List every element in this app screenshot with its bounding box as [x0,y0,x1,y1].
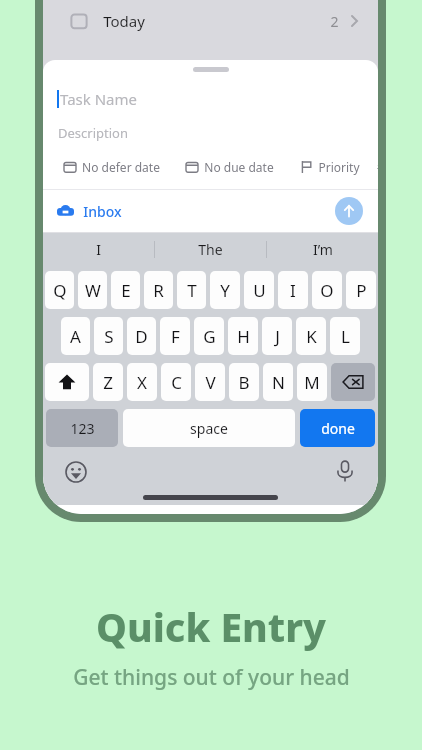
staticText: B [238,371,250,394]
button[interactable]: space [123,409,295,447]
button[interactable]: No defer date [55,154,169,179]
button[interactable]: M [297,363,327,401]
staticText: C [171,371,182,394]
staticText: I [290,279,296,302]
button[interactable]: L [330,317,360,355]
button[interactable]: K [296,317,326,355]
staticText: Inbox [83,202,122,221]
button[interactable]: Shift [45,363,89,401]
staticText: Quick Entry [96,600,326,653]
button[interactable]: I’m [267,240,378,259]
staticText: K [306,325,317,348]
staticText: L [341,325,350,348]
button[interactable]: V [195,363,225,401]
button[interactable]: Y [210,271,240,309]
button[interactable]: J [262,317,292,355]
button[interactable]: Backspace [331,363,375,401]
staticText: Task Name [60,89,137,109]
staticText: Priority [318,159,360,175]
staticText: done [321,419,355,438]
button[interactable]: H [228,317,258,355]
staticText: 2 [330,12,339,31]
button[interactable]: N [263,363,293,401]
button[interactable]: G [194,317,224,355]
staticText: No due date [204,159,274,175]
staticText: Today [103,11,145,31]
staticText: S [104,325,114,348]
staticText: Description [58,124,128,142]
staticText: space [190,419,228,438]
button[interactable]: W [78,271,107,309]
staticText: Q [53,279,67,302]
button[interactable]: Submit [335,197,363,225]
button[interactable]: O [312,271,342,309]
staticText: # [377,158,378,176]
staticText: X [137,371,147,394]
staticText: W [85,279,101,302]
staticText: T [187,279,197,302]
staticText: E [121,279,131,302]
button[interactable]: C [161,363,191,401]
staticText: M [304,371,320,394]
staticText: R [153,279,164,302]
button[interactable]: S [94,317,123,355]
staticText: The [198,240,223,259]
button[interactable]: F [160,317,190,355]
staticText: No defer date [82,159,160,175]
button[interactable]: B [229,363,259,401]
staticText: F [171,325,180,348]
staticText: A [70,325,81,348]
staticText: H [237,325,250,348]
button[interactable]: Priority [291,154,369,179]
staticText: P [356,279,367,302]
button[interactable]: E [111,271,140,309]
button[interactable]: Emoji [65,461,87,483]
button[interactable]: 123 [46,409,118,447]
staticText: D [135,325,148,348]
staticText: N [272,371,285,394]
staticText: I’m [313,240,333,259]
button[interactable]: D [127,317,156,355]
button[interactable]: The [155,240,266,259]
staticText: O [320,279,334,302]
staticText: Z [103,371,113,394]
staticText: I [96,240,101,259]
button[interactable]: U [244,271,274,309]
button[interactable]: No due date [177,154,283,179]
button[interactable]: I [43,240,154,259]
button[interactable]: T [177,271,206,309]
button[interactable]: Inbox [57,202,122,221]
staticText: U [253,279,266,302]
staticText: Y [220,279,230,302]
button[interactable]: Q [45,271,74,309]
button[interactable]: Dictation [334,460,356,482]
button[interactable]: P [346,271,376,309]
button[interactable]: R [144,271,173,309]
button[interactable]: X [127,363,157,401]
staticText: Get things out of your head [73,663,350,692]
button[interactable]: A [61,317,90,355]
button[interactable]: Z [93,363,123,401]
staticText: G [203,325,216,348]
button[interactable]: I [278,271,308,309]
button[interactable]: done [300,409,375,447]
staticText: 123 [70,419,95,438]
staticText: V [205,371,216,394]
staticText: J [275,325,280,348]
button[interactable]: # [377,154,378,179]
